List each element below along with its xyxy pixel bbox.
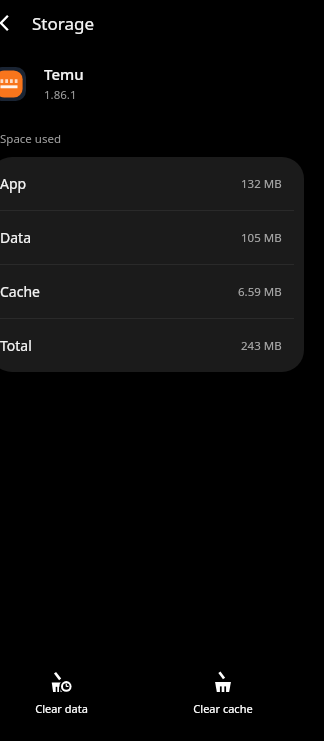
staticText: App <box>0 174 27 193</box>
button[interactable]: Clear data <box>0 645 142 741</box>
staticText: Total <box>0 336 32 355</box>
button[interactable]: App <box>0 157 304 210</box>
button[interactable]: Data <box>0 211 304 264</box>
staticText: 1.86.1 <box>44 87 77 103</box>
staticText: 105 MB <box>241 230 282 246</box>
button[interactable]: Back <box>0 6 22 40</box>
staticText: Space used <box>0 131 62 147</box>
button[interactable]: Total <box>0 319 304 372</box>
staticText: 132 MB <box>241 176 282 192</box>
staticText: 243 MB <box>241 338 282 354</box>
staticText: Cache <box>0 282 40 301</box>
staticText: Clear data <box>35 701 88 716</box>
staticText: Storage <box>32 12 95 35</box>
staticText: Data <box>0 228 31 247</box>
button[interactable]: Cache <box>0 265 304 318</box>
staticText: Temu <box>44 64 84 84</box>
staticText: 6.59 MB <box>238 284 282 300</box>
button[interactable]: Clear cache <box>142 645 304 741</box>
staticText: Clear cache <box>193 701 253 716</box>
